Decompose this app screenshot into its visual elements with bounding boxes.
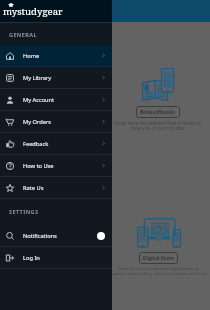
button[interactable]: Home (0, 45, 112, 66)
button[interactable]: Rate Us (0, 177, 112, 198)
staticText: GENERAL (9, 31, 37, 38)
staticText: mystudygear (3, 5, 63, 18)
button[interactable]: My Account (0, 89, 112, 110)
button[interactable]: Feedback (0, 133, 112, 154)
staticText: My Orders (23, 118, 101, 126)
staticText: Digital Store (143, 255, 174, 262)
button[interactable]: Notifications (0, 225, 112, 246)
staticText: Enter here for a wholesome digital learn… (109, 266, 208, 276)
staticText: Rate Us (23, 184, 101, 192)
staticText: Books/Ebooks (140, 109, 176, 116)
other: Notifications toggle (97, 232, 105, 240)
staticText: My Library (23, 74, 101, 82)
staticText: How to Use (23, 162, 101, 170)
button[interactable]: Digital Store (139, 252, 178, 264)
button[interactable]: Books/Ebooks (0, 22, 210, 310)
staticText: Log In (23, 254, 106, 262)
other: App bar (0, 0, 210, 22)
staticText: My Account (23, 96, 101, 104)
button[interactable]: Log In (0, 247, 112, 268)
staticText: Home (23, 52, 101, 60)
staticText: Feedback (23, 140, 101, 148)
button[interactable]: Books/Ebooks (136, 106, 180, 118)
staticText: SETTINGS (9, 208, 39, 215)
staticText: Notifications (23, 232, 97, 240)
staticText: Enter here for selected free e-books to … (111, 120, 205, 131)
button[interactable]: How to Use (0, 155, 112, 176)
button[interactable]: My Library (0, 67, 112, 88)
button[interactable]: My Orders (0, 111, 112, 132)
